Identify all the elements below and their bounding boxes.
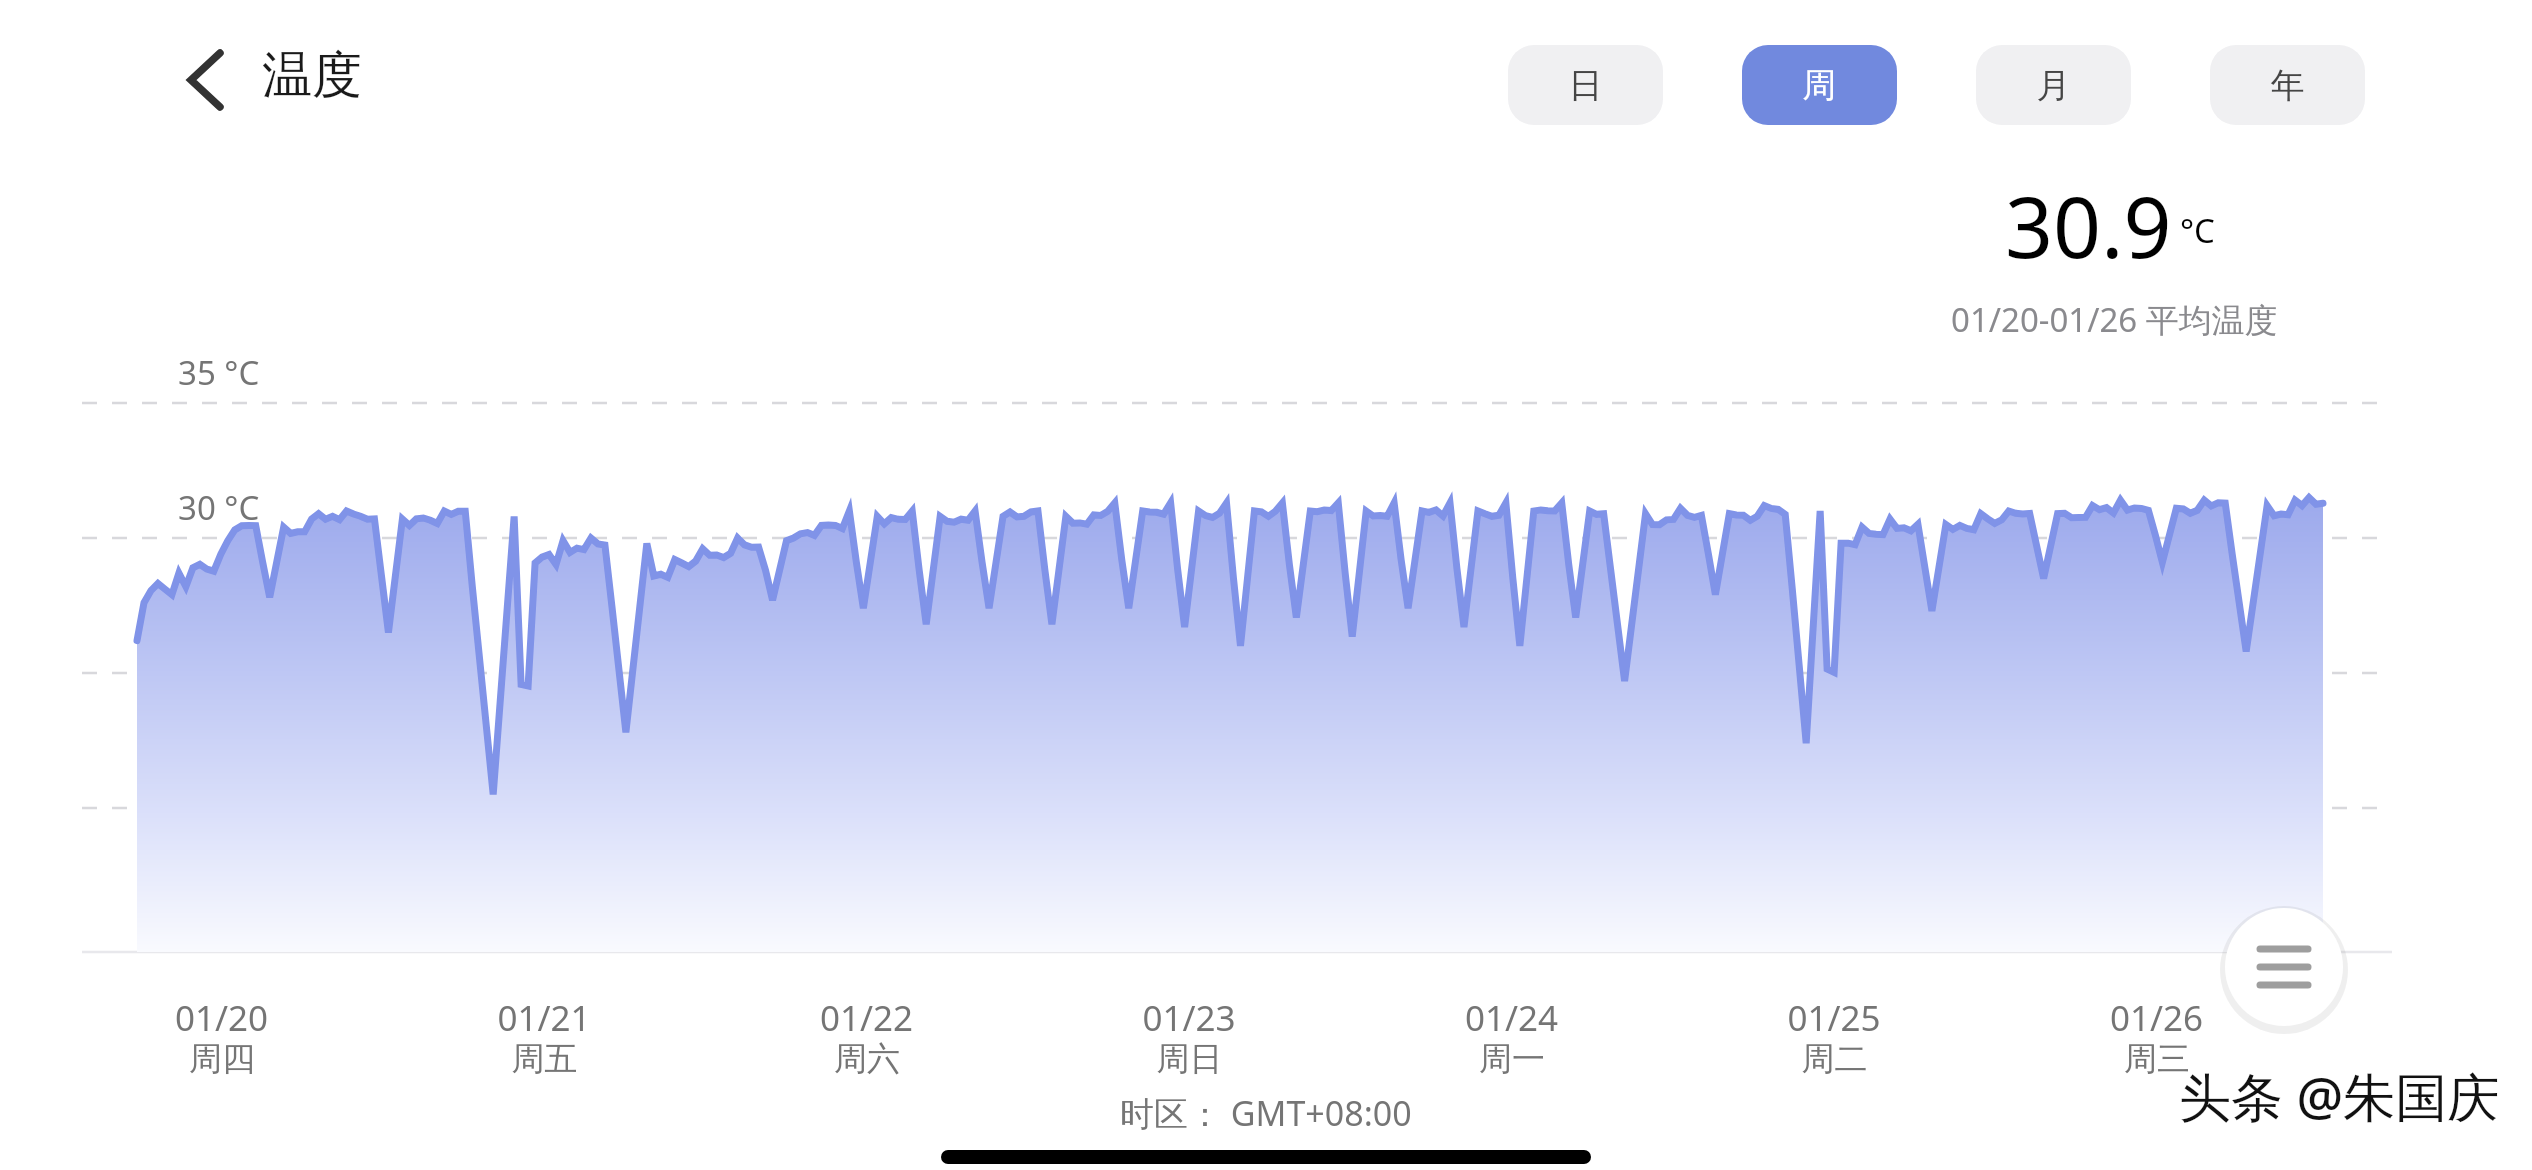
button[interactable] <box>258 32 478 132</box>
button[interactable] <box>2210 45 2365 125</box>
button[interactable]: 返回 <box>152 30 258 130</box>
button[interactable] <box>1742 45 1897 125</box>
button[interactable] <box>1508 45 1663 125</box>
button[interactable] <box>1976 45 2131 125</box>
button[interactable]: 更多选项 <box>2225 908 2343 1026</box>
